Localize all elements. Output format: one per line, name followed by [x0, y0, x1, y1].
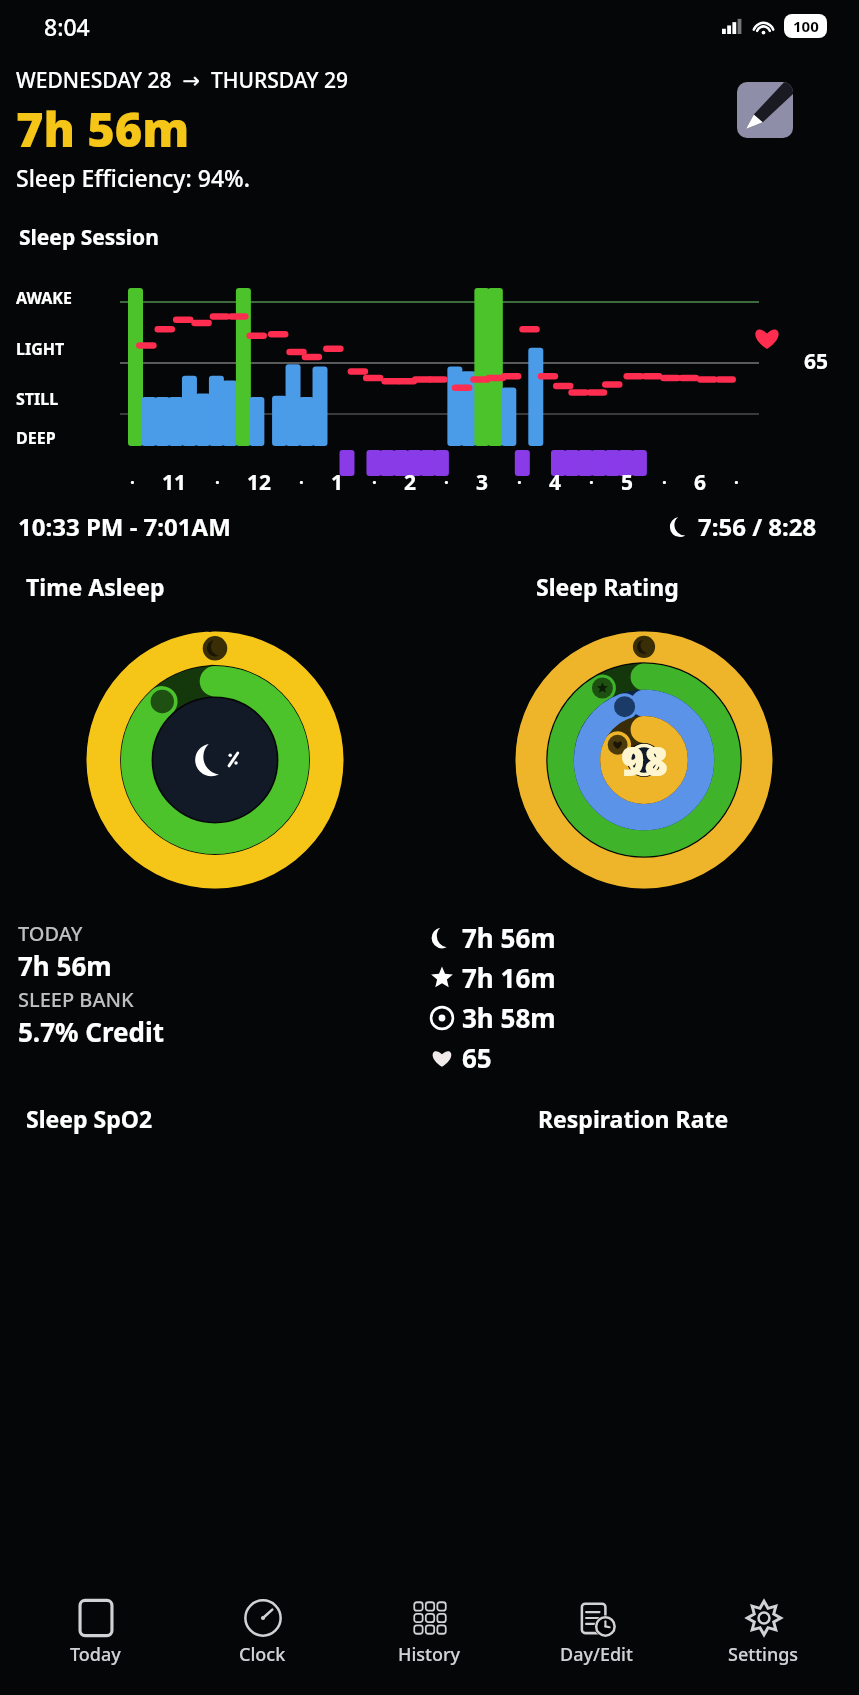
staticText: 5: [621, 468, 634, 497]
staticText: ·: [662, 471, 667, 494]
button[interactable]: Settings: [680, 1569, 847, 1673]
staticText: ·: [517, 471, 522, 494]
staticText: 7h 56m: [16, 97, 190, 161]
staticText: 10:33 PM - 7:01AM: [18, 510, 231, 543]
staticText: Clock: [239, 1642, 286, 1667]
staticText: AWAKE: [16, 287, 72, 309]
staticText: Sleep Rating: [536, 571, 679, 602]
staticText: 3h 58m: [462, 1000, 556, 1035]
staticText: 65: [462, 1040, 492, 1075]
staticText: ·: [372, 471, 377, 494]
staticText: 98: [621, 733, 668, 787]
staticText: Sleep Session: [19, 223, 159, 252]
button[interactable]: Today: [12, 1569, 179, 1673]
button[interactable]: Day/Edit: [513, 1569, 680, 1673]
button[interactable]: History: [346, 1569, 513, 1673]
staticText: Settings: [728, 1642, 799, 1667]
staticText: ·: [734, 471, 739, 494]
staticText: 7h 56m: [18, 948, 112, 983]
staticText: STILL: [16, 388, 59, 410]
staticText: 65: [804, 347, 829, 376]
button[interactable]: Edit: [737, 82, 793, 138]
staticText: 5.7% Credit: [18, 1014, 165, 1049]
staticText: Sleep SpO2: [26, 1103, 153, 1134]
staticText: 3: [476, 468, 489, 497]
staticText: 2: [404, 468, 417, 497]
staticText: ·: [589, 471, 594, 494]
staticText: WEDNESDAY 28 → THURSDAY 29: [16, 66, 348, 95]
staticText: TODAY: [18, 920, 83, 947]
staticText: ·: [130, 471, 135, 494]
staticText: 8:04: [44, 11, 90, 42]
staticText: 11: [162, 468, 187, 497]
staticText: 12: [247, 468, 272, 497]
staticText: 6: [694, 468, 707, 497]
staticText: 7:56 / 8:28: [698, 510, 817, 543]
staticText: Time Asleep: [26, 571, 165, 602]
staticText: ·: [299, 471, 304, 494]
staticText: DEEP: [16, 427, 56, 449]
staticText: SLEEP BANK: [18, 986, 134, 1013]
staticText: ·: [444, 471, 449, 494]
staticText: 7h 56m: [462, 920, 556, 955]
staticText: 1: [331, 468, 344, 497]
staticText: History: [398, 1642, 461, 1667]
staticText: Today: [70, 1642, 121, 1667]
staticText: Sleep Efficiency: 94%.: [16, 162, 250, 193]
button[interactable]: Clock: [179, 1569, 346, 1673]
staticText: LIGHT: [16, 338, 65, 360]
staticText: 4: [549, 468, 562, 497]
staticText: 7h 16m: [462, 960, 556, 995]
staticText: 100: [793, 16, 819, 36]
staticText: Respiration Rate: [538, 1103, 729, 1134]
staticText: Day/Edit: [560, 1642, 633, 1667]
staticText: ·: [215, 471, 220, 494]
